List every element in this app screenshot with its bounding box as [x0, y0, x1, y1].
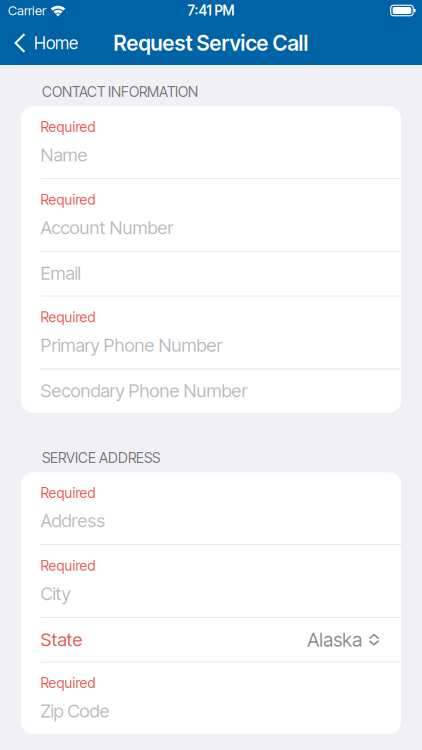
staticText: Required	[40, 484, 95, 501]
button[interactable]: Required	[21, 662, 401, 734]
staticText: Carrier	[8, 3, 46, 18]
button[interactable]: Home	[0, 21, 88, 65]
staticText: Required	[40, 675, 95, 691]
button[interactable]: Required	[21, 472, 401, 544]
staticText: Required	[40, 309, 95, 325]
staticText: Required	[40, 191, 95, 208]
button[interactable]: Email	[21, 252, 401, 295]
staticText: 7:41 PM	[187, 2, 234, 19]
button[interactable]: Required	[21, 545, 401, 617]
staticText: State	[40, 629, 82, 650]
button[interactable]: State	[21, 618, 401, 661]
button[interactable]: Required	[21, 179, 401, 251]
staticText: SERVICE ADDRESS	[42, 449, 160, 466]
staticText: Required	[40, 557, 95, 574]
button[interactable]: Required	[21, 296, 401, 368]
staticText: Zip Code	[40, 700, 109, 722]
staticText: Secondary Phone Number	[40, 380, 247, 401]
staticText: Email	[40, 262, 80, 284]
staticText: Address	[40, 510, 105, 531]
staticText: Request Service Call	[113, 31, 308, 55]
staticText: City	[40, 583, 70, 604]
staticText: Alaska	[307, 628, 362, 651]
button[interactable]: Secondary Phone Number	[21, 369, 401, 413]
staticText: Account Number	[40, 217, 173, 238]
staticText: Name	[40, 144, 87, 165]
staticText: Required	[40, 118, 95, 135]
staticText: CONTACT INFORMATION	[42, 83, 198, 100]
button[interactable]: Required	[21, 106, 401, 178]
staticText: Home	[34, 33, 78, 53]
staticText: Primary Phone Number	[40, 334, 222, 356]
